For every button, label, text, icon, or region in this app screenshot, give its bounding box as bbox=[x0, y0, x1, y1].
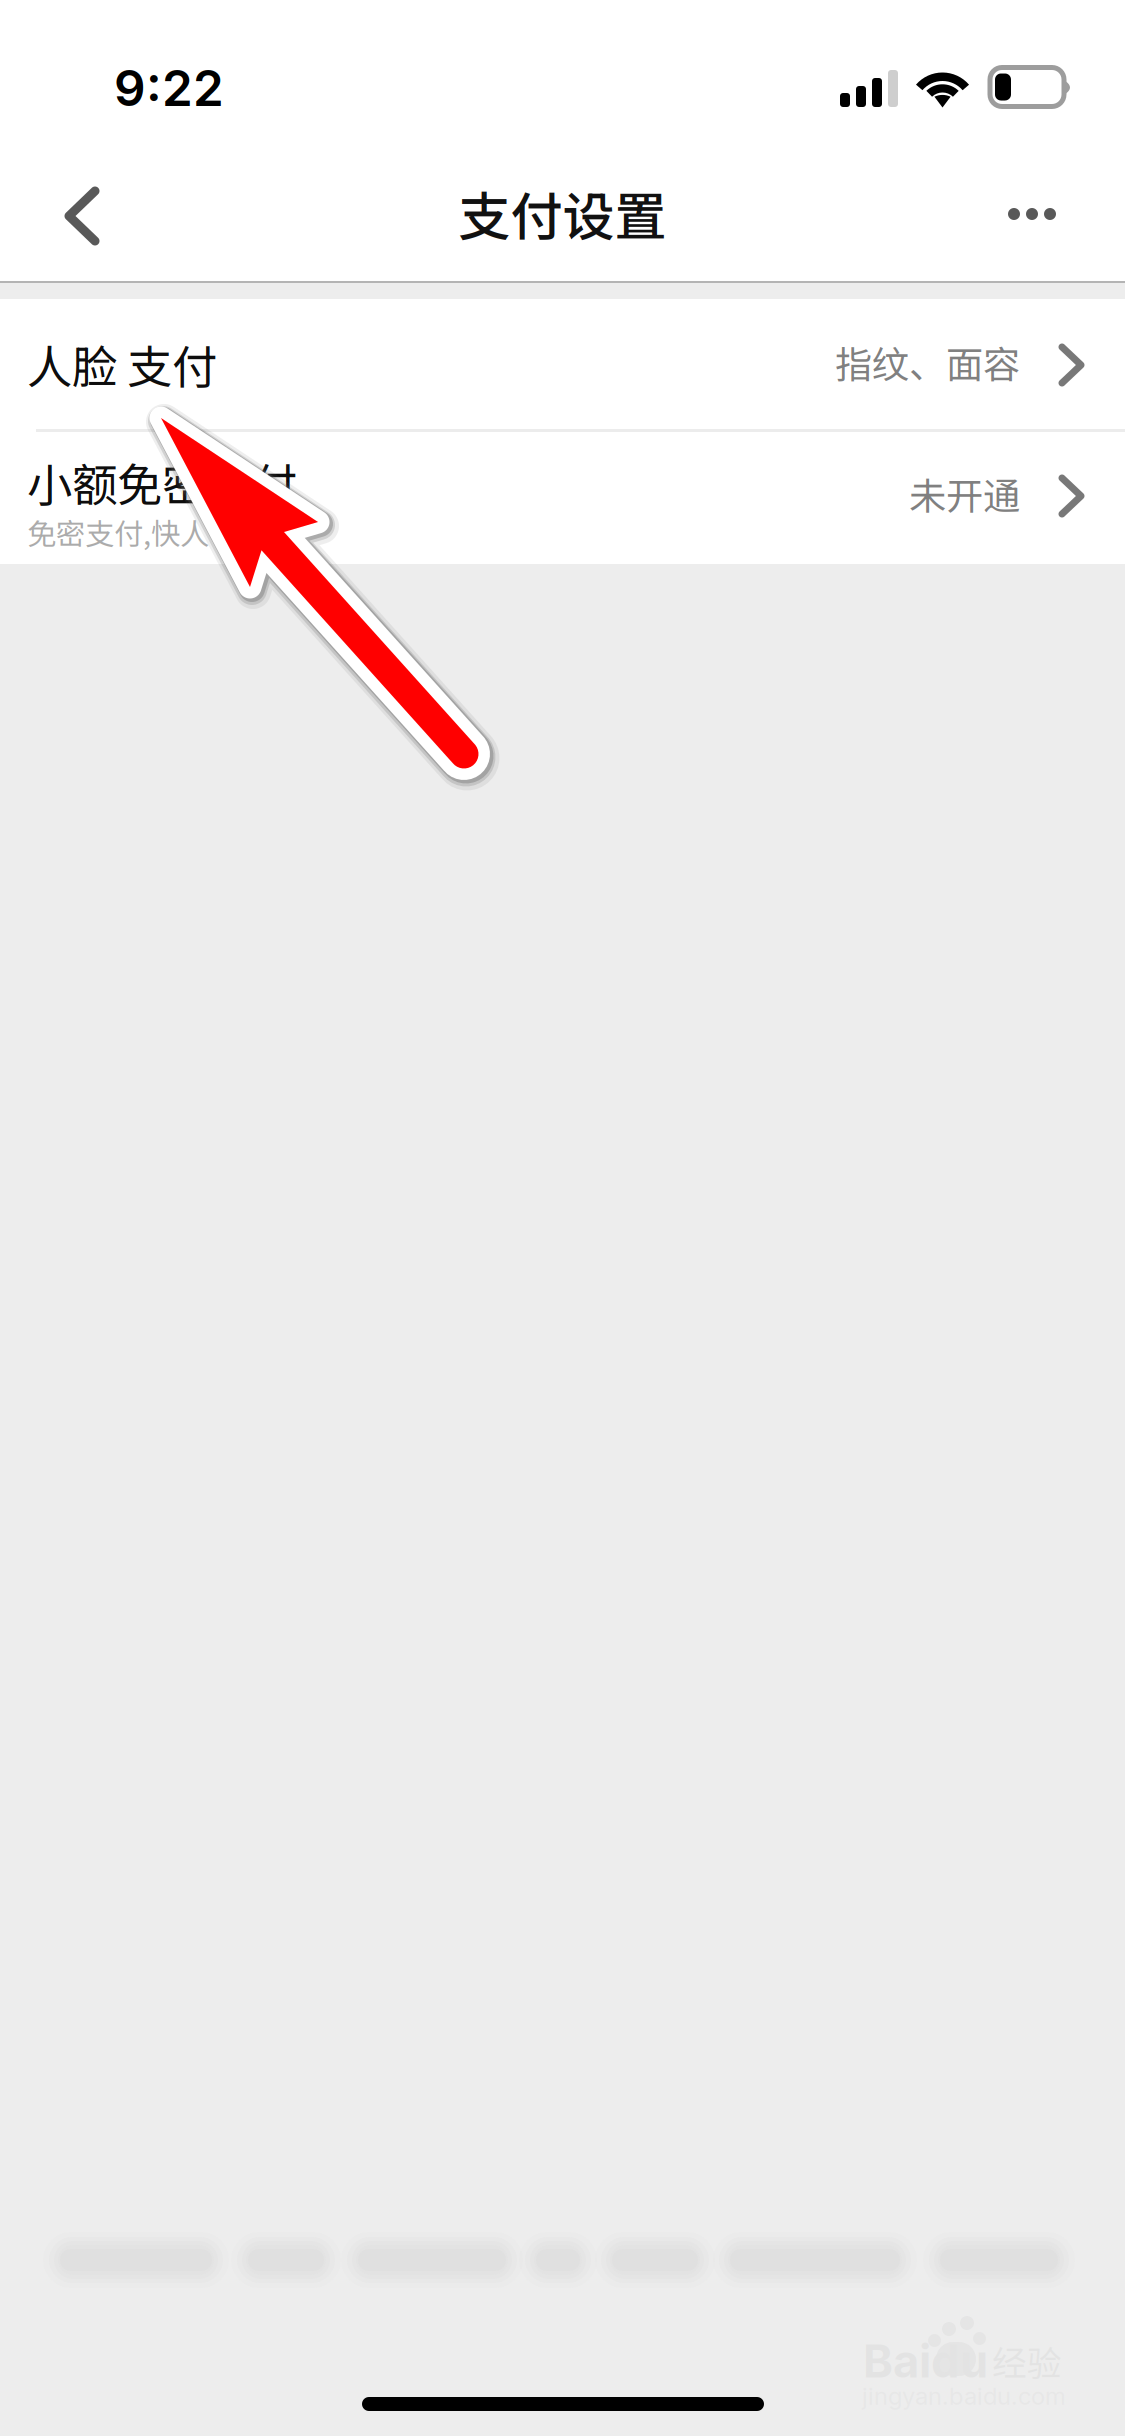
staticText: 人脸 支付 bbox=[27, 331, 217, 397]
button[interactable]: 人脸 支付 bbox=[0, 299, 1125, 429]
staticText: 小额免密支付 bbox=[27, 449, 297, 515]
button[interactable]: 小额免密支付 bbox=[0, 431, 1125, 564]
staticText: 免密支付,快人一步 bbox=[27, 511, 267, 553]
staticText: 指纹、面容 bbox=[835, 335, 1020, 389]
staticText: 经验 bbox=[992, 2336, 1062, 2386]
staticText: Baidu bbox=[863, 2334, 988, 2388]
staticText: 支付设置 bbox=[458, 175, 666, 251]
button[interactable]: More bbox=[967, 148, 1097, 280]
staticText: 未开通 bbox=[909, 466, 1020, 521]
button[interactable]: Back bbox=[0, 150, 150, 282]
staticText: 9:22 bbox=[114, 58, 224, 118]
